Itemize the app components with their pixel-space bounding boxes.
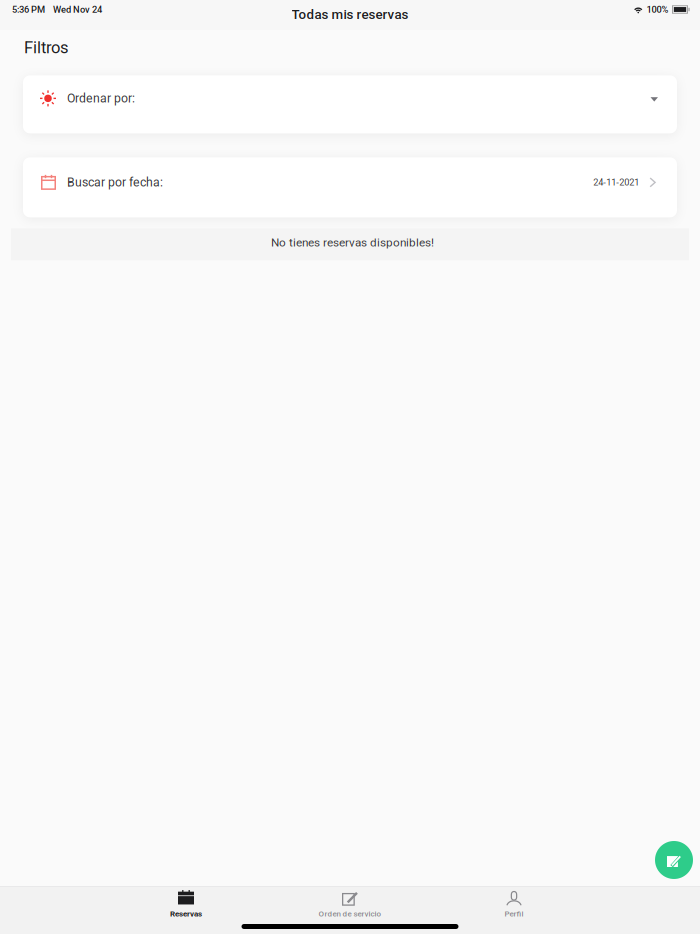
staticText: Filtros (24, 38, 69, 57)
staticText: 5:36 PM (12, 4, 45, 15)
staticText: Wed Nov 24 (53, 4, 102, 15)
staticText: Ordenar por: (67, 91, 135, 106)
button[interactable]: Reservas (104, 890, 268, 918)
button[interactable]: Buscar por fecha: (23, 157, 677, 217)
staticText: Todas mis reservas (291, 7, 408, 22)
staticText: 100% (646, 4, 668, 15)
button[interactable]: Nueva orden de servicio (655, 841, 693, 879)
staticText: 24-11-2021 (593, 177, 639, 188)
button[interactable]: Orden de servicio (268, 890, 432, 918)
button[interactable]: Ordenar por: (23, 75, 677, 133)
staticText: Perfil (504, 909, 523, 918)
staticText: Reservas (170, 909, 202, 918)
button[interactable]: Perfil (432, 890, 596, 918)
staticText: No tienes reservas disponibles! (271, 235, 434, 249)
staticText: Buscar por fecha: (67, 175, 163, 190)
staticText: Orden de servicio (318, 909, 381, 918)
